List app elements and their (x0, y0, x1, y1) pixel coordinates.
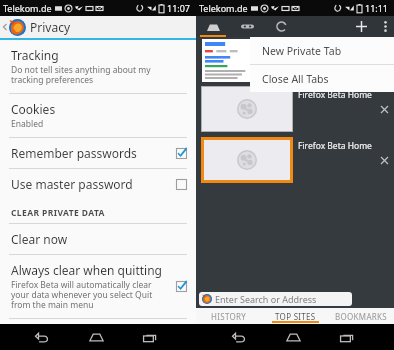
button[interactable]: Clear now (0, 224, 196, 254)
button[interactable]: BOOKMARKS (328, 308, 394, 324)
other: Checked (176, 281, 187, 292)
staticText: Telekom.de (199, 2, 248, 14)
button[interactable]: Recent apps (132, 324, 168, 350)
button[interactable]: Enter Search or Address (199, 292, 352, 306)
staticText: Remember passwords (11, 145, 137, 161)
button[interactable]: Close tab (374, 86, 394, 132)
staticText: Privacy (30, 19, 71, 35)
staticText: BOOKMARKS (335, 311, 388, 322)
staticText: Do not tell sites anything about my trac… (11, 64, 185, 86)
button[interactable]: Back (220, 324, 257, 350)
other: Unchecked (176, 179, 187, 190)
staticText: Telekom.de (3, 2, 52, 14)
button[interactable]: TOP SITES (262, 308, 328, 324)
staticText: Firefox Beta will automatically clear yo… (11, 279, 170, 311)
button[interactable]: Close tab (374, 137, 394, 183)
button[interactable]: New Private Tab (250, 37, 394, 64)
staticText: Always clear when quitting (11, 262, 162, 278)
button[interactable]: New tab (346, 16, 376, 37)
button[interactable]: Synced tabs (264, 16, 298, 37)
button[interactable]: HISTORY (196, 308, 262, 324)
staticText: Tracking (11, 47, 59, 63)
staticText: Enabled (11, 118, 44, 130)
button[interactable]: Private tabs (230, 16, 264, 37)
staticText: CLEAR PRIVATE DATA (11, 207, 105, 219)
button[interactable]: Always clear when quitting (0, 255, 196, 318)
button[interactable]: Back (23, 324, 60, 350)
staticText: Cookies (11, 101, 56, 117)
staticText: Clear now (11, 231, 68, 247)
button[interactable]: More options (376, 16, 394, 37)
button[interactable]: Close All Tabs (250, 65, 394, 92)
staticText: 11:07 (167, 2, 191, 14)
staticText: Enter Search or Address (215, 293, 317, 305)
button[interactable]: Normal tabs (196, 16, 230, 37)
staticText: Firefox Beta Home (298, 140, 372, 152)
staticText: Firefox Beta Home (298, 89, 372, 101)
button[interactable]: Recent apps (329, 324, 365, 350)
staticText: HISTORY (211, 311, 247, 322)
staticText: 11:11 (365, 2, 389, 14)
button[interactable]: Cookies (0, 94, 196, 137)
button[interactable]: Privacy (0, 16, 196, 38)
button[interactable]: Remember passwords (0, 138, 196, 168)
button[interactable]: Firefox Beta Home (196, 86, 394, 132)
button[interactable]: Tracking (0, 40, 196, 93)
button[interactable]: Use master password (0, 169, 196, 199)
button[interactable]: Firefox Beta Home (196, 137, 394, 183)
other: Checked (176, 148, 187, 159)
button[interactable]: Home (275, 324, 311, 350)
staticText: New Private Tab (262, 44, 342, 58)
button[interactable]: Home (78, 324, 114, 350)
staticText: Use master password (11, 176, 133, 192)
staticText: TOP SITES (275, 311, 316, 322)
staticText: Close All Tabs (262, 72, 329, 86)
button[interactable] (202, 39, 262, 82)
